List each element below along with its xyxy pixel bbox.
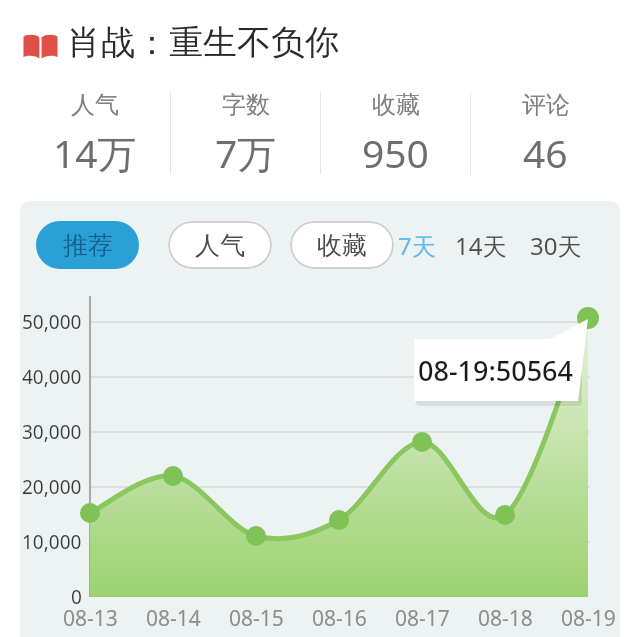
- button[interactable]: 评论: [471, 88, 620, 178]
- button[interactable]: 收藏: [290, 221, 394, 269]
- staticText: 20,000: [22, 474, 82, 500]
- staticText: 46: [523, 126, 568, 178]
- staticText: 0: [71, 584, 82, 610]
- staticText: 08-19: [561, 604, 616, 633]
- button[interactable]: 字数: [171, 88, 320, 178]
- staticText: 14天: [455, 229, 507, 262]
- staticText: 30,000: [22, 419, 82, 445]
- staticText: 08-17: [395, 604, 450, 633]
- staticText: 08-13: [63, 604, 118, 633]
- staticText: 评论: [522, 90, 570, 120]
- staticText: 14万: [53, 126, 137, 178]
- staticText: 推荐: [63, 230, 113, 261]
- staticText: 肖战：重生不负你: [67, 21, 339, 64]
- button[interactable]: 人气: [168, 221, 272, 269]
- button[interactable]: 人气: [20, 88, 170, 178]
- staticText: 50,000: [22, 309, 82, 335]
- staticText: 08-15: [229, 604, 284, 633]
- staticText: 人气: [71, 90, 119, 120]
- staticText: 收藏: [317, 230, 367, 261]
- staticText: 收藏: [372, 90, 420, 120]
- button[interactable]: 推荐: [36, 221, 139, 269]
- staticText: 40,000: [22, 364, 82, 390]
- staticText: 10,000: [22, 529, 82, 555]
- staticText: 08-19:50564: [418, 352, 574, 389]
- staticText: 30天: [530, 229, 582, 262]
- button[interactable]: 7天: [398, 221, 436, 269]
- button[interactable]: 收藏: [321, 88, 470, 178]
- staticText: 950: [362, 126, 429, 178]
- staticText: 08-18: [478, 604, 533, 633]
- staticText: 08-16: [312, 604, 367, 633]
- staticText: 08-14: [146, 604, 201, 633]
- staticText: 字数: [222, 90, 270, 120]
- button[interactable]: 30天: [530, 221, 582, 269]
- staticText: 7万: [215, 126, 277, 178]
- button[interactable]: 14天: [455, 221, 507, 269]
- staticText: 人气: [195, 230, 245, 261]
- staticText: 7天: [398, 229, 436, 262]
- button[interactable]: 肖战：重生不负你: [22, 20, 339, 64]
